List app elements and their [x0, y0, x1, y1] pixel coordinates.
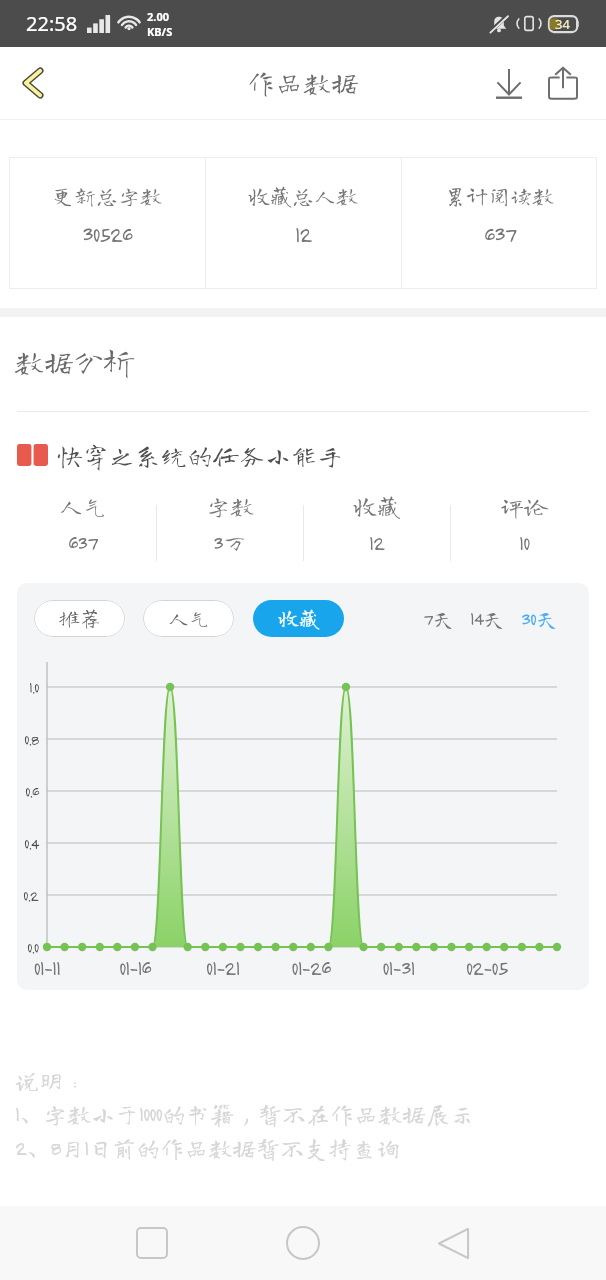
button[interactable]: Back [423, 1213, 483, 1273]
button[interactable]: 收藏总人数 [206, 157, 401, 289]
button[interactable]: 更新总字数 [9, 157, 205, 289]
staticText: 收藏 [278, 608, 320, 629]
button[interactable]: 收藏 [253, 600, 344, 637]
button[interactable]: Back [6, 56, 60, 110]
staticText: 12 [369, 531, 385, 555]
button[interactable]: Recents [122, 1213, 182, 1273]
staticText: 3万 [213, 531, 247, 555]
button[interactable]: 30天 [521, 608, 558, 630]
staticText: 收藏总人数 [248, 185, 359, 207]
button[interactable]: 7天 [423, 608, 455, 630]
button[interactable]: 快穿之系统的任务小能手 [17, 439, 606, 471]
staticText: 2、8月1日前的作品数据暂不支持查询 [15, 1136, 401, 1160]
staticText: 快穿之系统的任务小能手 [57, 442, 344, 468]
staticText: 1、字数小于1000的书籍，暂不在作品数据展示 [15, 1102, 474, 1126]
staticText: 637 [68, 531, 97, 555]
staticText: 人气 [59, 494, 107, 518]
button[interactable]: 14天 [470, 608, 505, 630]
staticText: 34 [555, 15, 570, 33]
staticText: 更新总字数 [52, 185, 163, 207]
staticText: 评论 [500, 494, 548, 518]
button[interactable]: 推荐 [34, 600, 125, 637]
staticText: KB/S [147, 24, 173, 39]
button[interactable]: 人气 [143, 600, 234, 637]
button[interactable]: 评论 [451, 489, 597, 577]
staticText: 说明： [15, 1068, 87, 1092]
button[interactable]: Home [273, 1213, 333, 1273]
button[interactable]: Download [488, 58, 538, 108]
staticText: 人气 [168, 608, 210, 629]
button[interactable]: 累计阅读数 [402, 157, 597, 289]
staticText: 637 [484, 221, 516, 247]
staticText: 12 [295, 221, 312, 247]
staticText: 推荐 [59, 608, 101, 629]
button[interactable]: 人气 [9, 489, 156, 577]
staticText: 2.00 [147, 9, 169, 24]
button[interactable]: Share [538, 58, 588, 108]
button[interactable]: 字数 [157, 489, 303, 577]
staticText: 数据分析 [14, 347, 134, 377]
staticText: 累计阅读数 [444, 185, 555, 207]
staticText: 22:58 [26, 10, 78, 37]
staticText: 作品数据 [247, 68, 360, 96]
staticText: 10 [519, 531, 530, 555]
staticText: 收藏 [353, 494, 401, 518]
staticText: 30526 [82, 221, 132, 247]
staticText: 字数 [206, 494, 254, 518]
button[interactable]: 收藏 [304, 489, 450, 577]
